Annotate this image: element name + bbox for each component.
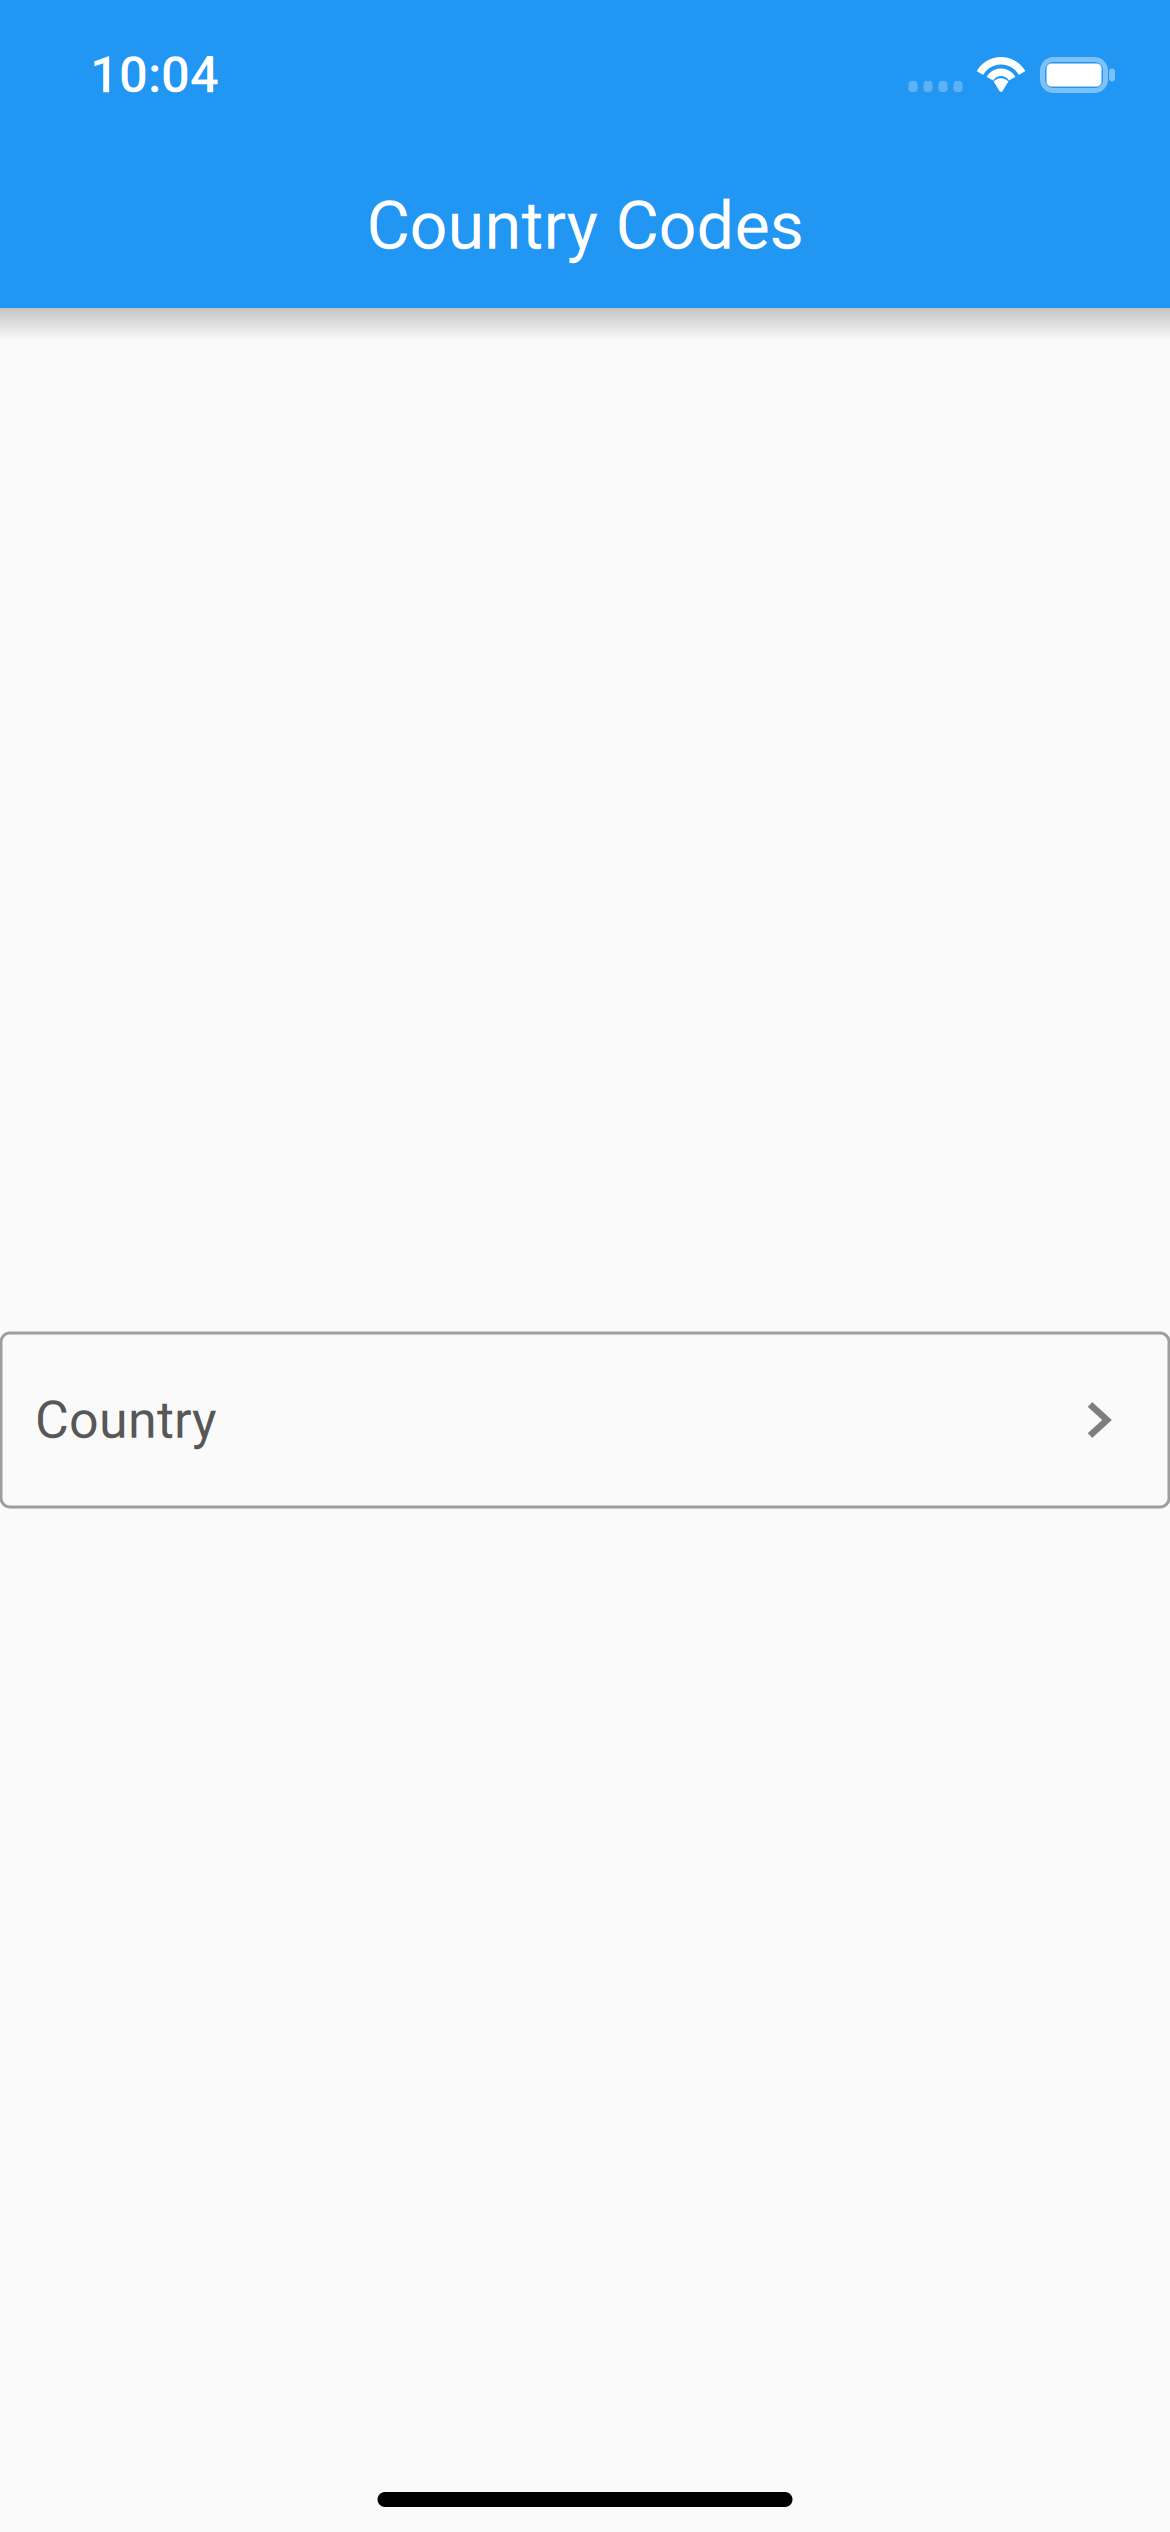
staticText: Country	[35, 1389, 217, 1450]
staticText: 10:04	[90, 45, 219, 105]
button[interactable]: Country	[1, 1333, 1169, 1507]
staticText: Country Codes	[366, 187, 803, 265]
